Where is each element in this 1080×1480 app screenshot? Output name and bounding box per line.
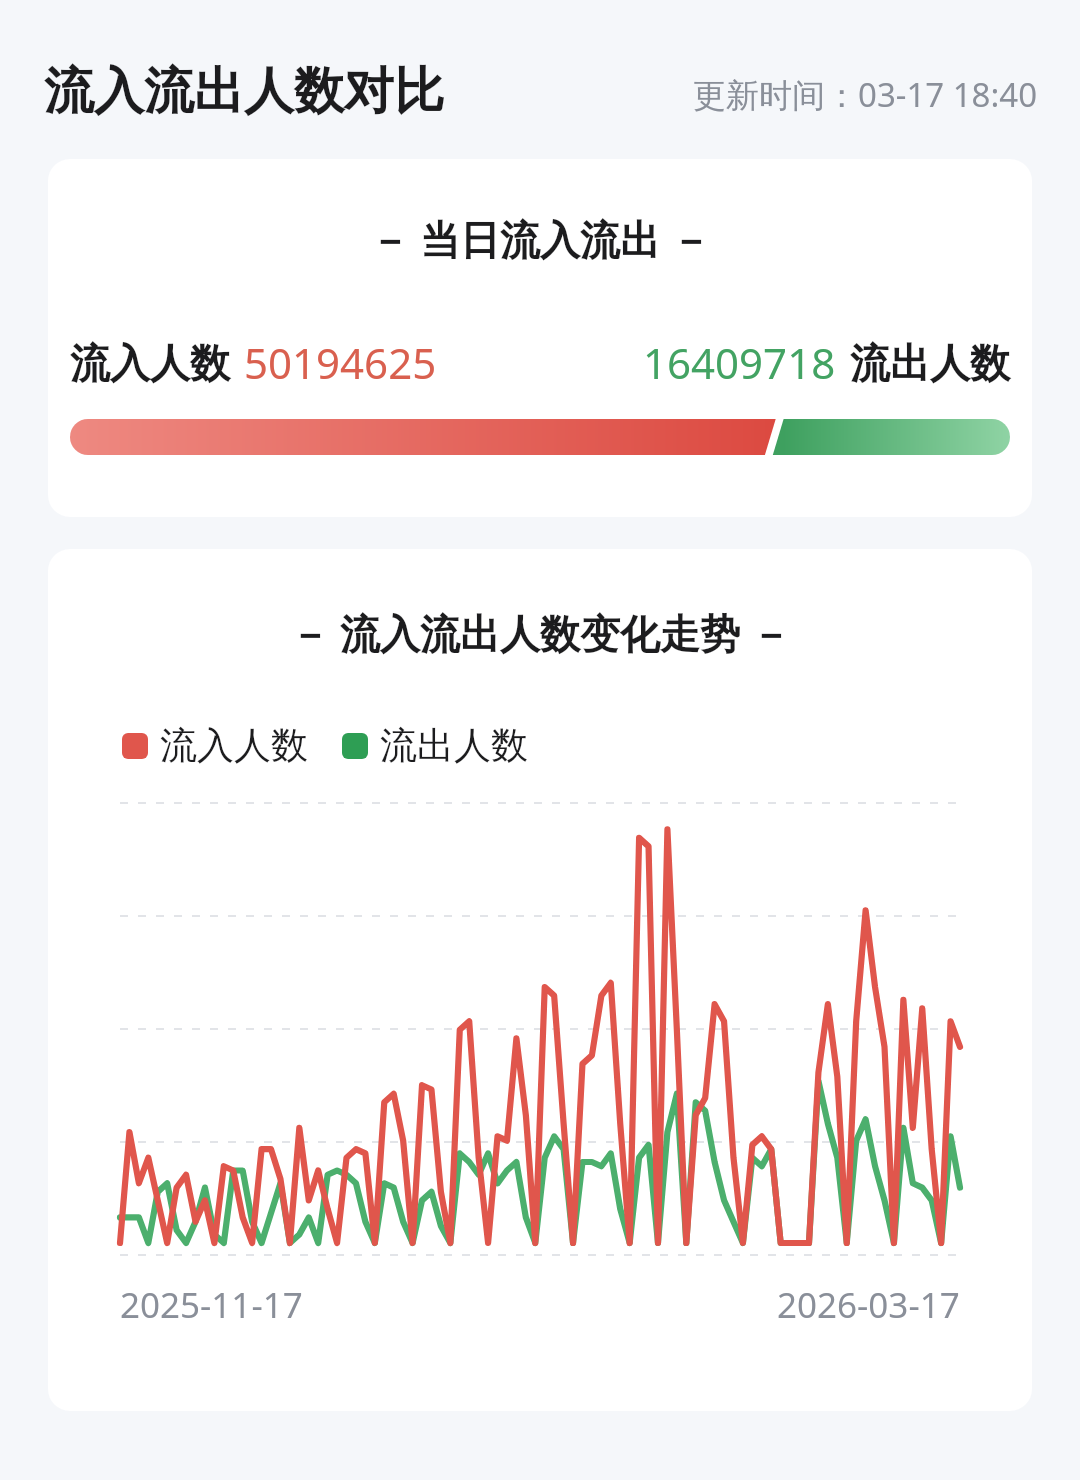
staticText: 16409718 — [643, 334, 836, 391]
staticText: 2025-11-17 — [120, 1281, 303, 1329]
button[interactable]: － 当日流入流出 － — [48, 159, 1032, 517]
staticText: － 当日流入流出 － — [48, 211, 1032, 266]
staticText: － 流入流出人数变化走势 － — [48, 605, 1032, 660]
staticText: 50194625 — [244, 334, 437, 391]
staticText: 2026-03-17 — [777, 1281, 960, 1329]
staticText: 更新时间：03-17 18:40 — [693, 72, 1038, 117]
staticText: 流出人数 — [380, 722, 528, 769]
staticText: 流出人数 — [850, 338, 1010, 388]
staticText: 流入人数 — [160, 722, 308, 769]
staticText: 流入人数 — [70, 338, 230, 388]
staticText: 流入流出人数对比 — [44, 60, 444, 123]
button[interactable]: － 流入流出人数变化走势 － — [48, 549, 1032, 1411]
